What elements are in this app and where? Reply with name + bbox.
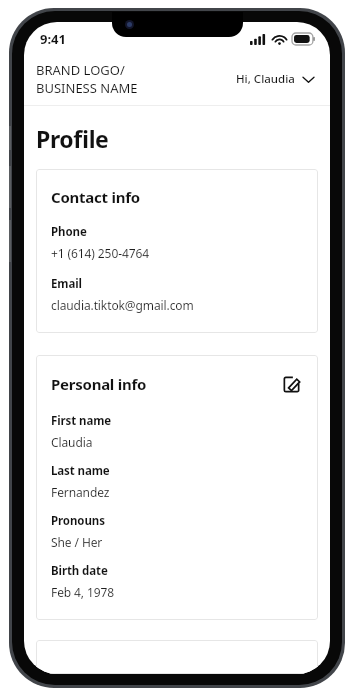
staticText: Phone — [51, 224, 87, 240]
staticText: claudia.tiktok@gmail.com — [51, 297, 194, 313]
staticText: Claudia — [51, 434, 93, 450]
staticText: Hi, Claudia — [236, 71, 295, 87]
button[interactable]: Edit — [277, 370, 305, 398]
staticText: +1 (614) 250-4764 — [51, 245, 149, 261]
staticText: Email — [51, 276, 82, 292]
staticText: BRAND LOGO/ — [36, 61, 125, 79]
button[interactable]: Contact info — [36, 169, 318, 333]
staticText: Last name — [51, 463, 110, 479]
staticText: Feb 4, 1978 — [51, 584, 115, 600]
staticText: Contact info — [51, 187, 140, 207]
button[interactable]: Hi, Claudia — [232, 66, 318, 92]
staticText: Pronouns — [51, 513, 105, 529]
staticText: First name — [51, 413, 112, 429]
staticText: BUSINESS NAME — [36, 79, 138, 97]
staticText: 9:41 — [40, 30, 66, 48]
staticText: She / Her — [51, 534, 103, 550]
staticText: Personal info — [51, 374, 277, 394]
staticText: Birth date — [51, 563, 108, 579]
staticText: Fernandez — [51, 484, 110, 500]
staticText: Profile — [36, 123, 109, 154]
